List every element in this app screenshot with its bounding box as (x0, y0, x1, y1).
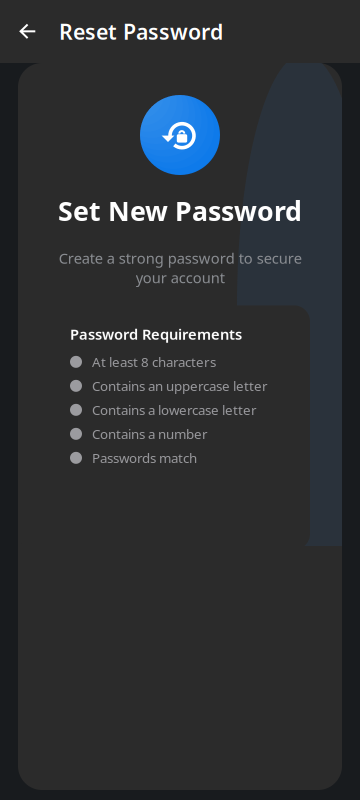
staticText: Set New Password (58, 193, 302, 228)
staticText: Contains a lowercase letter (92, 401, 257, 419)
staticText: Passwords match (92, 449, 197, 467)
staticText: At least 8 characters (92, 353, 216, 371)
staticText: Reset Password (59, 17, 223, 46)
staticText: Create a strong password to secure your … (58, 248, 301, 287)
button[interactable]: Back (6, 9, 50, 53)
staticText: Contains an uppercase letter (92, 377, 268, 395)
staticText: Password Requirements (70, 324, 242, 344)
staticText: Contains a number (92, 425, 208, 443)
